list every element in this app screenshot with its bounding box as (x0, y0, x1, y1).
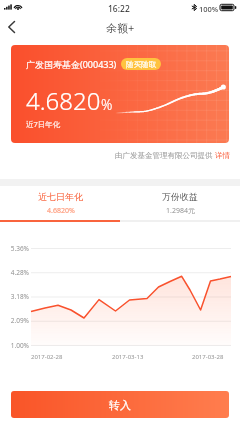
staticText: 1.00% (5, 341, 29, 350)
button[interactable]: 转入 (11, 391, 229, 418)
staticText: 5.36% (5, 244, 29, 253)
staticText: 余额+ (106, 20, 135, 35)
staticText: 1.2984元 (166, 206, 195, 216)
staticText: 16:22 (108, 3, 130, 15)
staticText: 近7日年化 (26, 119, 61, 129)
button[interactable]: Back (0, 14, 22, 40)
staticText: 转入 (109, 398, 131, 412)
button[interactable]: 近七日年化 (0, 186, 120, 222)
staticText: 万份收益 (162, 191, 198, 202)
staticText: 广发国寿基金(000433) (26, 58, 117, 70)
staticText: 近七日年化 (38, 191, 83, 202)
staticText: 4.28% (5, 268, 29, 277)
button[interactable]: 随买随取 (126, 58, 156, 70)
staticText: 4.6820% (47, 206, 75, 216)
staticText: 2017-03-28 (192, 353, 224, 361)
staticText: 4.6820 (26, 84, 101, 117)
staticText: 2017-03-13 (112, 353, 144, 361)
staticText: 100% (199, 4, 219, 14)
staticText: 由广发基金管理有限公司提供 (115, 150, 215, 160)
staticText: 2.09% (5, 316, 29, 325)
button[interactable]: 广发国寿基金(000433) (11, 45, 229, 143)
staticText: 3.18% (5, 292, 29, 301)
button[interactable]: 万份收益 (120, 186, 240, 222)
staticText: % (101, 95, 113, 114)
button[interactable]: 详情 (215, 151, 230, 160)
staticText: 随买随取 (126, 60, 156, 69)
staticText: 2017-02-28 (31, 353, 63, 361)
